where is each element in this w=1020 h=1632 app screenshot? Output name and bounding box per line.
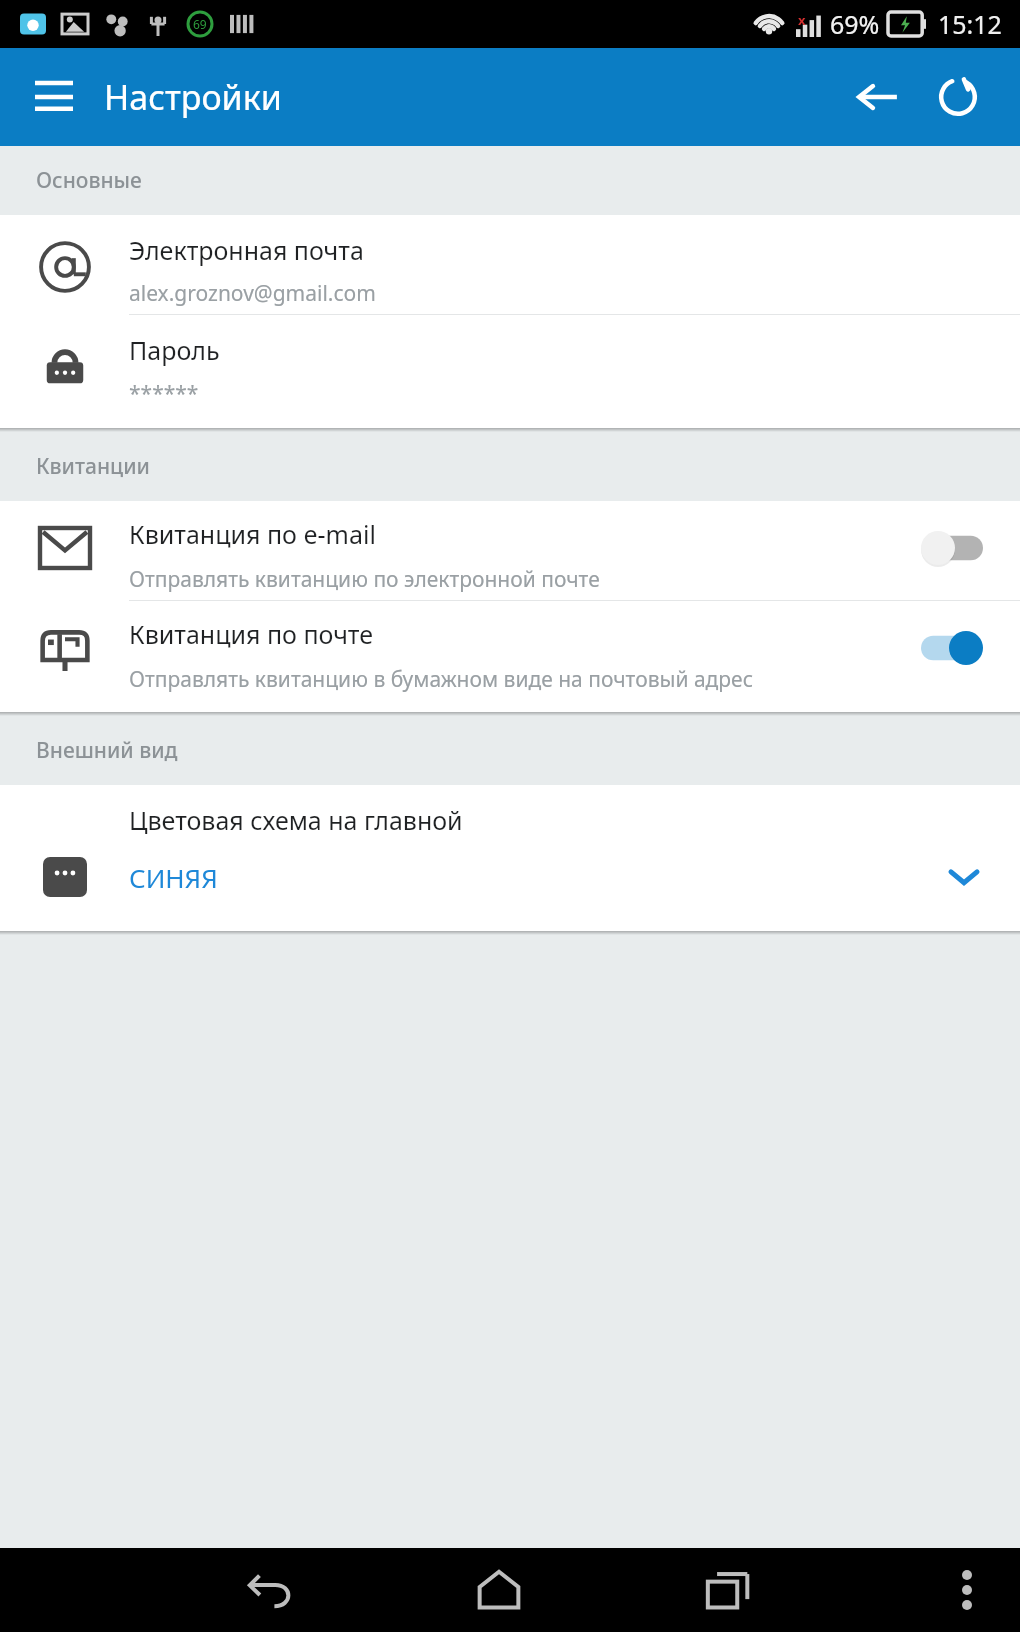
button[interactable]: Включено: [914, 617, 990, 679]
staticText: 15:12: [938, 7, 1002, 41]
staticText: Квитанция по почте: [129, 617, 374, 651]
button[interactable]: Пароль: [0, 315, 1020, 414]
button[interactable]: Назад: [230, 1550, 310, 1630]
staticText: Квитанции: [36, 452, 150, 481]
staticText: 69%: [830, 7, 880, 41]
staticText: Квитанция по e-mail: [129, 517, 376, 551]
button[interactable]: Электронная почта: [0, 215, 1020, 314]
staticText: Пароль: [129, 333, 220, 367]
staticText: Отправлять квитанцию по электронной почт…: [129, 565, 600, 594]
button[interactable]: Назад: [838, 57, 918, 137]
staticText: x: [798, 11, 806, 29]
staticText: Отправлять квитанцию в бумажном виде на …: [129, 665, 754, 694]
button[interactable]: Квитанция по e-mail: [0, 501, 1020, 600]
staticText: Настройки: [104, 74, 282, 120]
staticText: Электронная почта: [129, 233, 364, 267]
button[interactable]: Квитанция по почте: [0, 601, 1020, 700]
button[interactable]: Ещё: [932, 1555, 1002, 1625]
staticText: СИНЯЯ: [129, 860, 218, 895]
staticText: ******: [129, 379, 199, 408]
staticText: Основные: [36, 166, 142, 195]
button[interactable]: Цветовая схема на главной: [0, 785, 1020, 905]
staticText: alex.groznov@gmail.com: [129, 279, 376, 308]
staticText: Внешний вид: [36, 736, 178, 765]
button[interactable]: Домой: [459, 1550, 539, 1630]
button[interactable]: Последние приложения: [688, 1550, 768, 1630]
button[interactable]: Обновить: [918, 57, 998, 137]
button[interactable]: Выключено: [914, 517, 990, 579]
button[interactable]: Меню: [22, 65, 86, 129]
staticText: 69: [193, 16, 207, 32]
staticText: Цветовая схема на главной: [129, 803, 463, 837]
